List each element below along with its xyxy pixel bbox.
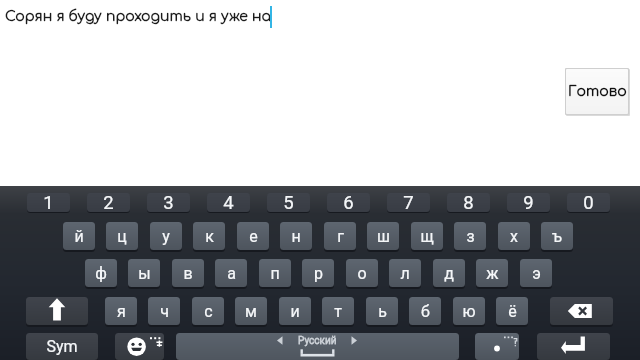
button[interactable]: ь: [366, 297, 398, 325]
staticText: 1: [43, 193, 54, 211]
button[interactable]: ц: [106, 222, 138, 250]
button[interactable]: 9: [507, 193, 550, 212]
staticText: я: [117, 302, 126, 321]
button[interactable]: г: [324, 222, 356, 250]
button[interactable]: а: [215, 259, 247, 287]
staticText: в: [183, 264, 193, 283]
button[interactable]: й: [63, 222, 95, 250]
button[interactable]: я: [105, 297, 137, 325]
staticText: 6: [343, 193, 354, 211]
staticText: а: [227, 264, 236, 283]
button[interactable]: 3: [147, 193, 190, 212]
button[interactable]: ъ: [541, 222, 573, 250]
staticText: э: [532, 264, 541, 283]
staticText: ш: [377, 227, 390, 246]
button[interactable]: с: [192, 297, 224, 325]
staticText: х: [510, 227, 518, 246]
button[interactable]: Готово: [565, 68, 630, 116]
staticText: ы: [138, 264, 151, 283]
button[interactable]: л: [389, 259, 421, 287]
button[interactable]: н: [280, 222, 312, 250]
button[interactable]: ш: [367, 222, 399, 250]
staticText: Русский: [298, 335, 337, 347]
staticText: е: [249, 227, 258, 246]
staticText: н: [291, 227, 301, 246]
staticText: ф: [95, 264, 107, 283]
staticText: и: [290, 302, 300, 321]
staticText: 7: [403, 193, 414, 211]
button[interactable]: 2: [87, 193, 130, 212]
button[interactable]: о: [346, 259, 378, 287]
button[interactable]: и: [279, 297, 311, 325]
staticText: щ: [420, 227, 434, 246]
button[interactable]: Shift: [26, 297, 88, 325]
staticText: д: [444, 264, 454, 283]
button[interactable]: ы: [128, 259, 160, 287]
staticText: ё: [508, 302, 517, 321]
staticText: л: [400, 264, 410, 283]
staticText: 4: [223, 193, 234, 211]
staticText: б: [421, 302, 430, 321]
staticText: ж: [486, 264, 499, 283]
button[interactable]: 8: [447, 193, 490, 212]
button[interactable]: 6: [327, 193, 370, 212]
button[interactable]: Backspace: [550, 297, 613, 325]
button[interactable]: ж: [476, 259, 508, 287]
staticText: ь: [378, 302, 387, 321]
staticText: ъ: [552, 227, 562, 246]
staticText: с: [204, 302, 213, 321]
staticText: з: [466, 227, 475, 246]
button[interactable]: 1: [27, 193, 70, 212]
button[interactable]: Space bar, Russian: [176, 333, 459, 360]
staticText: г: [337, 227, 344, 246]
button[interactable]: д: [433, 259, 465, 287]
button[interactable]: у: [150, 222, 182, 250]
button[interactable]: Emoji: [115, 333, 164, 360]
staticText: Сорян я буду проходить и я уже на: [5, 9, 271, 25]
staticText: к: [205, 227, 214, 246]
button[interactable]: х: [498, 222, 530, 250]
staticText: п: [270, 264, 280, 283]
button[interactable]: т: [322, 297, 354, 325]
staticText: т: [334, 302, 342, 321]
button[interactable]: Sym: [26, 333, 98, 360]
button[interactable]: Period: [475, 333, 519, 360]
button[interactable]: 5: [267, 193, 310, 212]
button[interactable]: э: [520, 259, 552, 287]
staticText: 3: [163, 193, 174, 211]
staticText: у: [162, 227, 170, 246]
staticText: й: [74, 227, 84, 246]
button[interactable]: е: [237, 222, 269, 250]
button[interactable]: 0: [567, 193, 610, 212]
staticText: о: [357, 264, 367, 283]
button[interactable]: ч: [148, 297, 180, 325]
button[interactable]: ф: [85, 259, 117, 287]
staticText: ц: [117, 227, 127, 246]
staticText: м: [245, 302, 257, 321]
staticText: 9: [523, 193, 534, 211]
button[interactable]: ю: [453, 297, 485, 325]
button[interactable]: р: [302, 259, 334, 287]
staticText: Sym: [46, 337, 78, 356]
button[interactable]: м: [235, 297, 267, 325]
staticText: ю: [462, 302, 476, 321]
button[interactable]: в: [172, 259, 204, 287]
staticText: 8: [463, 193, 474, 211]
button[interactable]: ё: [496, 297, 528, 325]
button[interactable]: щ: [411, 222, 443, 250]
button[interactable]: 7: [387, 193, 430, 212]
button[interactable]: п: [259, 259, 291, 287]
button[interactable]: б: [409, 297, 441, 325]
staticText: Готово: [568, 84, 627, 100]
button[interactable]: з: [454, 222, 486, 250]
button[interactable]: к: [193, 222, 225, 250]
staticText: 2: [103, 193, 114, 211]
button[interactable]: Enter: [537, 333, 610, 360]
staticText: 5: [283, 193, 294, 211]
staticText: 0: [583, 193, 594, 211]
button[interactable]: 4: [207, 193, 250, 212]
staticText: р: [314, 264, 323, 283]
staticText: ч: [160, 302, 169, 321]
